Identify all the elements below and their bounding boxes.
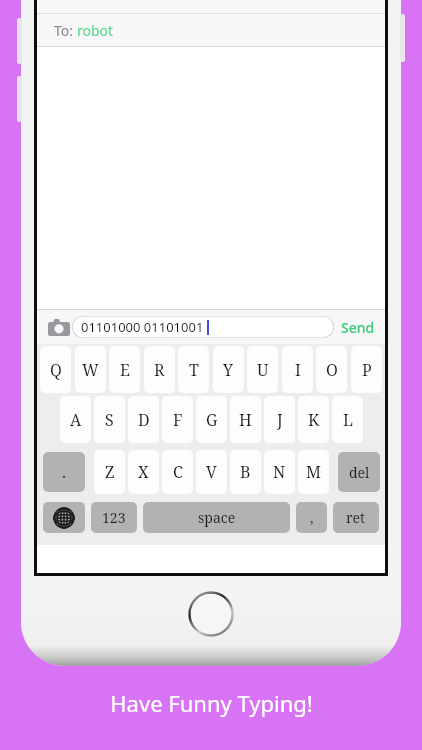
- button[interactable]: ret: [333, 502, 379, 533]
- button[interactable]: U: [247, 346, 278, 393]
- button[interactable]: V: [196, 450, 227, 494]
- staticText: .: [62, 461, 67, 483]
- button[interactable]: I: [282, 346, 313, 393]
- staticText: P: [362, 359, 372, 381]
- staticText: Y: [223, 359, 234, 381]
- staticText: M: [306, 461, 322, 483]
- staticText: 01101000 01101001: [81, 318, 204, 336]
- staticText: O: [326, 359, 338, 381]
- staticText: Z: [105, 461, 115, 483]
- staticText: F: [173, 409, 183, 431]
- staticText: ,: [310, 508, 314, 527]
- button[interactable]: B: [230, 450, 261, 494]
- staticText: Q: [50, 359, 62, 381]
- staticText: 123: [102, 508, 126, 527]
- button[interactable]: To:: [37, 14, 385, 46]
- button[interactable]: L: [332, 396, 363, 443]
- button[interactable]: P: [351, 346, 382, 393]
- button[interactable]: X: [128, 450, 159, 494]
- staticText: ret: [346, 508, 366, 527]
- button[interactable]: Change keyboard: [43, 502, 85, 533]
- button[interactable]: .: [43, 452, 85, 492]
- button[interactable]: Z: [94, 450, 125, 494]
- staticText: U: [257, 359, 269, 381]
- button[interactable]: K: [298, 396, 329, 443]
- staticText: G: [206, 409, 218, 431]
- staticText: J: [277, 409, 283, 431]
- staticText: Have Funny Typing!: [110, 688, 313, 718]
- staticText: V: [206, 461, 217, 483]
- button[interactable]: Q: [40, 346, 71, 393]
- button[interactable]: W: [75, 346, 106, 393]
- button[interactable]: T: [178, 346, 209, 393]
- button[interactable]: G: [196, 396, 227, 443]
- staticText: K: [308, 409, 320, 431]
- button[interactable]: N: [264, 450, 295, 494]
- staticText: T: [189, 359, 199, 381]
- staticText: del: [349, 463, 370, 482]
- button[interactable]: J: [264, 396, 295, 443]
- staticText: E: [120, 359, 130, 381]
- staticText: robot: [77, 21, 114, 40]
- button[interactable]: 01101000 01101001: [72, 316, 334, 338]
- staticText: I: [295, 359, 301, 381]
- staticText: W: [82, 359, 99, 381]
- button[interactable]: Home: [188, 591, 234, 637]
- button[interactable]: R: [144, 346, 175, 393]
- button[interactable]: S: [94, 396, 125, 443]
- staticText: B: [240, 461, 251, 483]
- button[interactable]: del: [338, 452, 380, 492]
- button[interactable]: ,: [296, 502, 327, 533]
- button[interactable]: H: [230, 396, 261, 443]
- staticText: To:: [54, 21, 77, 40]
- button[interactable]: O: [316, 346, 347, 393]
- button[interactable]: Y: [213, 346, 244, 393]
- button[interactable]: A: [60, 396, 91, 443]
- staticText: D: [138, 409, 150, 431]
- staticText: L: [343, 409, 353, 431]
- button[interactable]: E: [109, 346, 140, 393]
- staticText: space: [198, 508, 236, 527]
- button[interactable]: C: [162, 450, 193, 494]
- staticText: A: [70, 409, 82, 431]
- button[interactable]: space: [143, 502, 290, 533]
- staticText: H: [239, 409, 252, 431]
- staticText: C: [173, 461, 183, 483]
- staticText: N: [273, 461, 286, 483]
- button[interactable]: 123: [91, 502, 137, 533]
- staticText: R: [154, 359, 165, 381]
- staticText: X: [138, 461, 149, 483]
- button[interactable]: D: [128, 396, 159, 443]
- button[interactable]: Send: [341, 318, 375, 337]
- staticText: S: [105, 409, 114, 431]
- button[interactable]: F: [162, 396, 193, 443]
- button[interactable]: Camera: [46, 314, 72, 340]
- button[interactable]: M: [298, 450, 329, 494]
- staticText: Send: [341, 318, 375, 337]
